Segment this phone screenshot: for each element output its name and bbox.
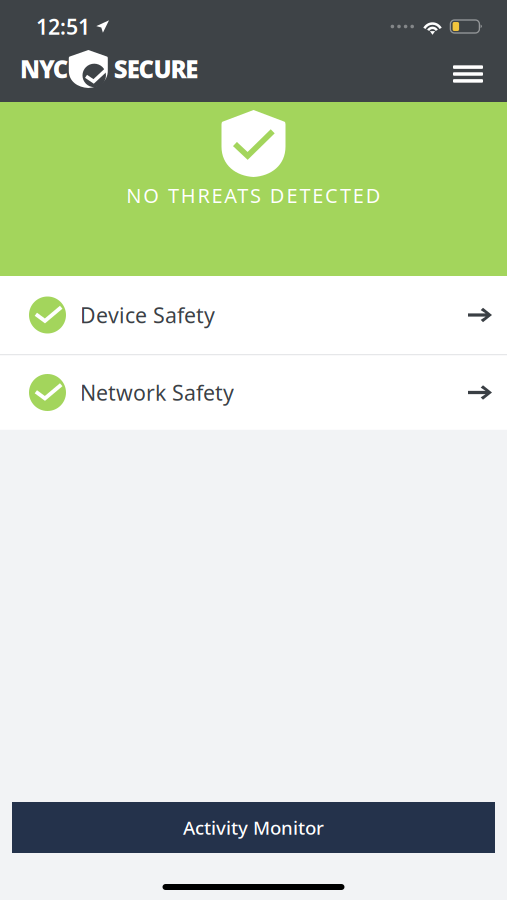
button[interactable]: Menu	[446, 42, 490, 96]
button[interactable]: Network Safety	[0, 355, 507, 429]
button[interactable]: Activity Monitor	[12, 802, 495, 853]
staticText: NO THREATS DETECTED	[126, 182, 381, 209]
staticText: SECURE	[114, 53, 198, 85]
staticText: 12:51	[36, 12, 90, 41]
staticText: Device Safety	[80, 301, 215, 329]
staticText: NYC	[20, 53, 69, 85]
button[interactable]: Device Safety	[0, 276, 507, 354]
staticText: Network Safety	[80, 378, 234, 407]
staticText: Activity Monitor	[183, 815, 324, 840]
